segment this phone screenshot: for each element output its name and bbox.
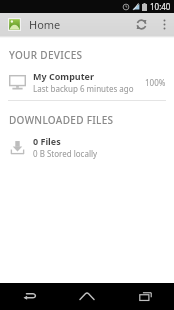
staticText: DOWNLOADED FILES [9, 113, 114, 127]
staticText: Last backup 6 minutes ago [33, 83, 134, 94]
button[interactable]: Recent apps [116, 283, 174, 310]
button[interactable]: Refresh [128, 13, 154, 36]
staticText: 0 Files [33, 135, 61, 147]
staticText: YOUR DEVICES [9, 48, 83, 62]
button[interactable]: More options [154, 13, 174, 36]
button[interactable]: My Computer [0, 65, 174, 100]
button[interactable]: 0 Files [0, 130, 174, 165]
staticText: 10:40 [150, 1, 171, 12]
button[interactable]: Home [58, 283, 116, 310]
staticText: 0 B Stored locally [33, 148, 98, 159]
staticText: Home [29, 17, 61, 32]
staticText: 100% [145, 77, 166, 88]
button[interactable]: Back [0, 283, 58, 310]
button[interactable]: Home [0, 17, 128, 32]
staticText: My Computer [33, 70, 94, 82]
